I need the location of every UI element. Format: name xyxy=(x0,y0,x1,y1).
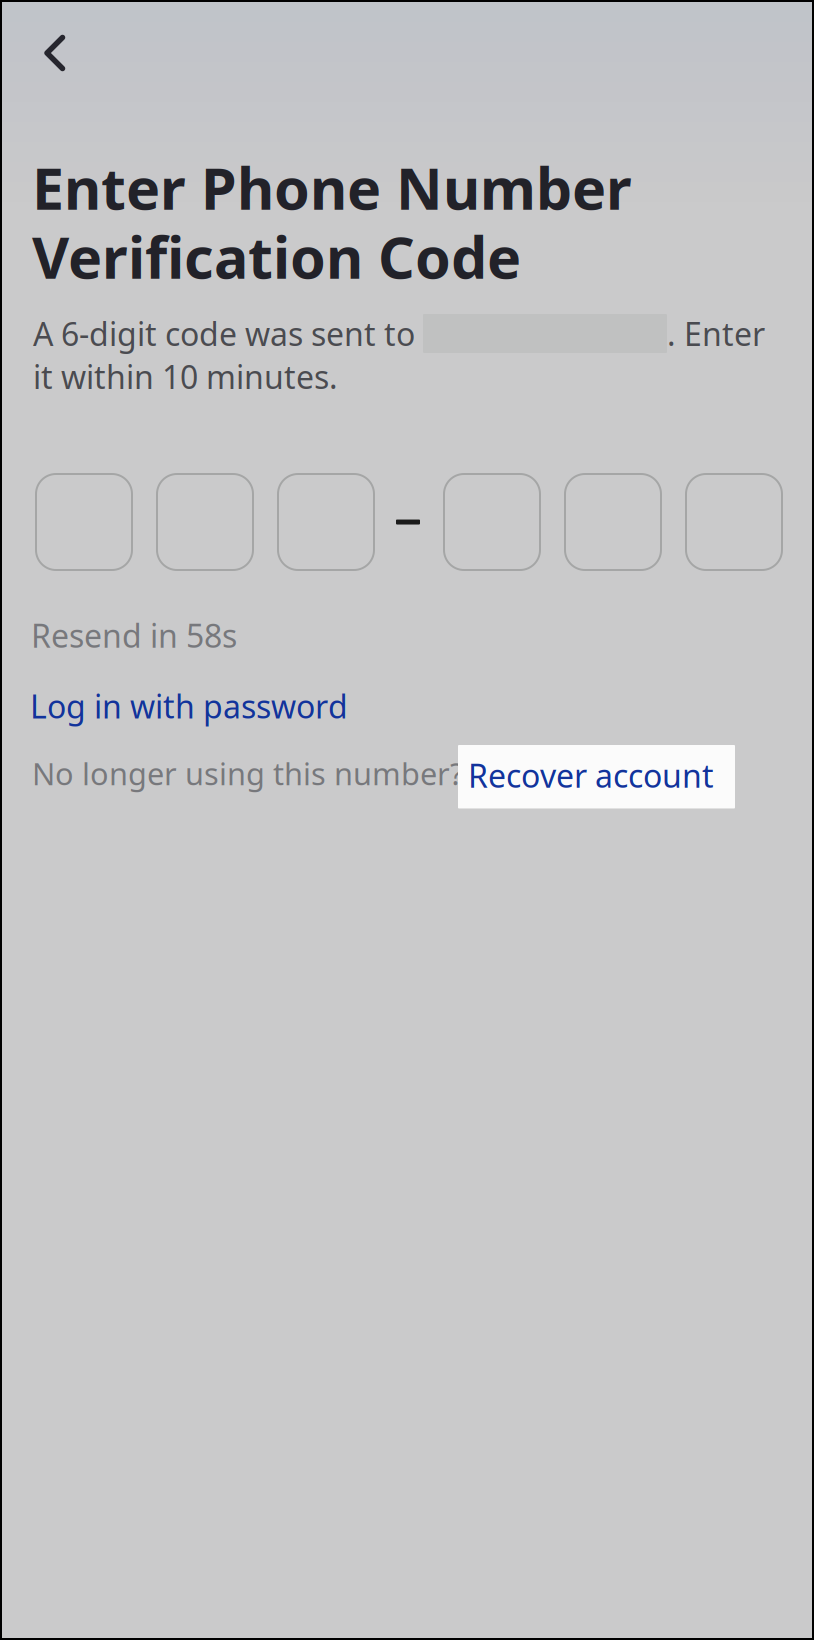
button[interactable]: Back xyxy=(13,11,97,95)
staticText: Resend in 58s xyxy=(31,614,237,656)
staticText: . Enter xyxy=(667,312,765,355)
button[interactable]: Log in with password xyxy=(30,669,348,743)
staticText: it within 10 minutes. xyxy=(33,355,338,398)
staticText: No longer using this number? xyxy=(32,753,463,794)
staticText: Recover account xyxy=(468,754,714,796)
staticText: Verification Code xyxy=(32,218,521,294)
button[interactable]: Recover account xyxy=(458,745,735,808)
staticText: A 6-digit code was sent to xyxy=(33,312,423,355)
staticText: Enter Phone Number xyxy=(32,149,632,225)
staticText: Log in with password xyxy=(30,685,348,727)
